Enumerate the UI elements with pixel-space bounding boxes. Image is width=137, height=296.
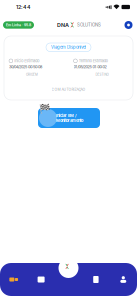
button[interactable]: Trips	[0, 263, 27, 296]
button[interactable]: Documents	[82, 263, 110, 296]
staticText: 30/04/2025 00:50:08	[9, 64, 42, 69]
staticText: Viagem Disponível	[51, 45, 86, 50]
button[interactable]: Iniciar EM / Monitoramento	[38, 108, 100, 128]
staticText: DESTINO	[95, 73, 108, 76]
button[interactable]: Profile	[110, 263, 137, 296]
button[interactable]: Home	[55, 263, 82, 296]
staticText: 12:44	[16, 4, 31, 10]
staticText: Iniciar EM / Monitoramento	[56, 113, 83, 123]
staticText: SOLUTIONS	[77, 22, 101, 28]
staticText: 🏁	[39, 103, 51, 114]
staticText: ORIGEM	[26, 73, 38, 76]
staticText: COM AUTORIZAÇÃO	[51, 87, 85, 92]
button[interactable]: Messages	[27, 263, 55, 296]
staticText: 01/05/2025 01:00:02	[73, 64, 106, 69]
staticText: Em Linha · 95.8	[6, 23, 31, 27]
staticText: DNA	[57, 22, 69, 28]
staticText: Início Estimado	[14, 59, 39, 63]
button[interactable]: Home	[57, 257, 79, 279]
staticText: Término Estimado	[79, 59, 108, 63]
button[interactable]: Settings	[124, 20, 133, 29]
